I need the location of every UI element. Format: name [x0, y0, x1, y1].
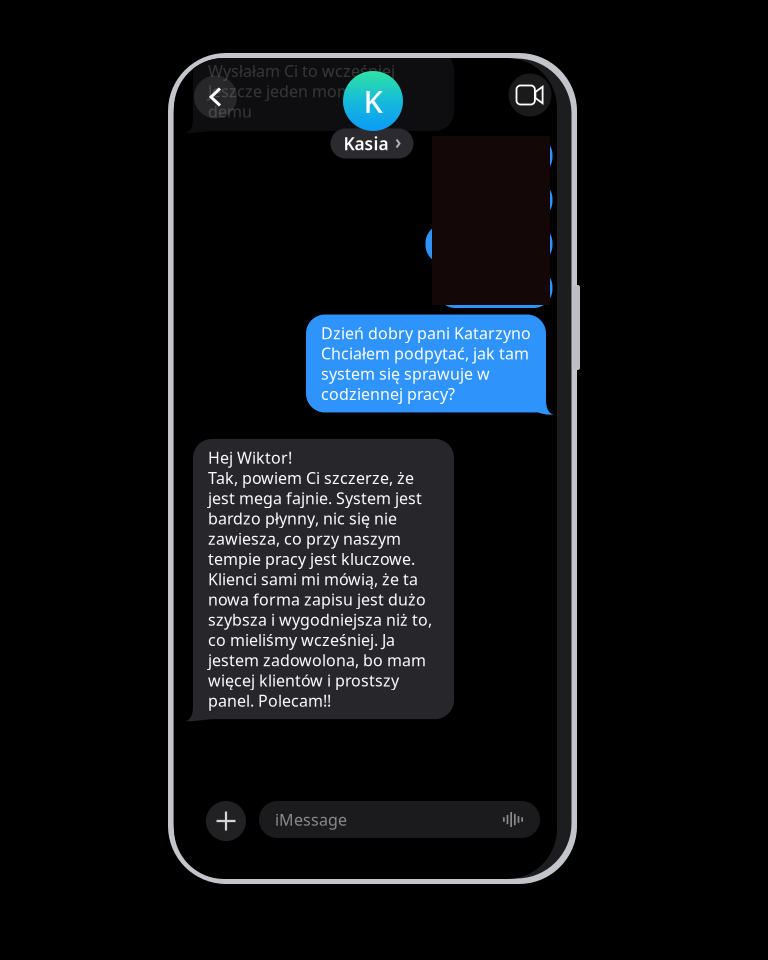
button[interactable]: Back — [194, 75, 237, 118]
staticText: Hej Wiktor! Tak, powiem Ci szczerze, że … — [208, 447, 432, 711]
staticText: iMessage — [275, 809, 347, 830]
button[interactable]: Kasia, contact details — [330, 128, 413, 158]
staticText: Dzień dobry pani Katarzyno Chciałem podp… — [321, 322, 531, 404]
button[interactable]: Add attachment — [206, 801, 246, 841]
button[interactable]: FaceTime — [508, 73, 551, 116]
staticText: Kasia — [343, 132, 388, 155]
staticText: Wysłałam Ci to wcześniej Jeszcze jeden m… — [208, 60, 401, 122]
staticText: K — [363, 81, 382, 121]
